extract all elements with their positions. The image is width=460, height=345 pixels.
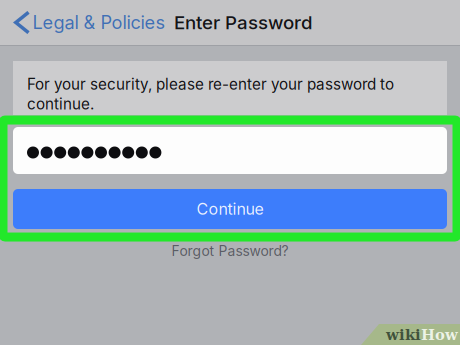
button[interactable]: Forgot Password? xyxy=(0,240,460,262)
staticText: Continue xyxy=(196,199,263,219)
button[interactable]: Continue xyxy=(13,189,447,229)
staticText: wiki xyxy=(386,326,421,343)
button[interactable]: Legal & Policies xyxy=(0,0,170,45)
staticText: For your security, please re-enter your … xyxy=(27,75,394,113)
staticText: Forgot Password? xyxy=(171,243,288,259)
staticText: Enter Password xyxy=(174,11,313,34)
staticText: Legal & Policies xyxy=(32,11,165,33)
staticText: How xyxy=(421,326,458,343)
